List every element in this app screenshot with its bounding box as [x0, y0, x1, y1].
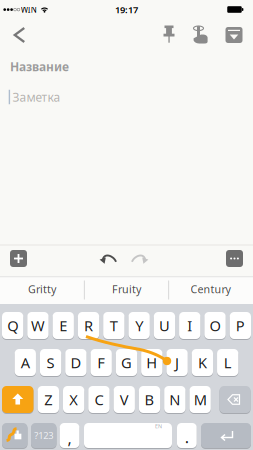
- button[interactable]: P: [230, 312, 251, 339]
- staticText: ,: [67, 427, 71, 449]
- button[interactable]: B: [139, 386, 160, 413]
- staticText: J: [175, 353, 179, 372]
- button[interactable]: V: [114, 386, 135, 413]
- staticText: Название: [10, 58, 69, 74]
- staticText: Fruity: [112, 282, 141, 296]
- staticText: Q: [7, 316, 18, 335]
- button[interactable]: Delete: [219, 386, 250, 413]
- button[interactable]: J: [166, 349, 188, 376]
- button[interactable]: Add: [10, 250, 27, 267]
- button[interactable]: More: [226, 250, 243, 267]
- staticText: D: [70, 353, 81, 372]
- button[interactable]: C: [88, 386, 110, 413]
- button[interactable]: Back: [11, 24, 28, 46]
- staticText: B: [145, 390, 155, 409]
- button[interactable]: Fruity: [86, 277, 166, 301]
- staticText: 19:17: [115, 3, 138, 16]
- button[interactable]: Shift: [2, 386, 33, 413]
- staticText: R: [84, 316, 93, 335]
- button[interactable]: Swype: [2, 423, 27, 448]
- button[interactable]: Space: [84, 423, 172, 448]
- staticText: ?123: [34, 429, 53, 442]
- staticText: Y: [135, 316, 143, 335]
- staticText: L: [224, 353, 232, 372]
- button[interactable]: R: [78, 312, 99, 339]
- button[interactable]: Return: [201, 423, 251, 448]
- staticText: W: [31, 316, 45, 335]
- button[interactable]: Undo: [100, 253, 116, 265]
- button[interactable]: S: [40, 349, 61, 376]
- button[interactable]: Swype gesture: [188, 22, 211, 46]
- button[interactable]: Redo: [132, 253, 148, 265]
- staticText: H: [146, 353, 157, 372]
- button[interactable]: L: [217, 349, 238, 376]
- button[interactable]: O: [204, 312, 226, 339]
- button[interactable]: E: [53, 312, 74, 339]
- staticText: E: [59, 316, 67, 335]
- staticText: S: [47, 353, 55, 372]
- staticText: C: [94, 390, 103, 409]
- staticText: EN: [155, 423, 162, 430]
- button[interactable]: T: [103, 312, 124, 339]
- button[interactable]: Z: [38, 386, 59, 413]
- button[interactable]: Period: [177, 423, 197, 448]
- button[interactable]: G: [116, 349, 137, 376]
- button[interactable]: M: [189, 386, 211, 413]
- staticText: Z: [44, 390, 52, 409]
- button[interactable]: H: [141, 349, 162, 376]
- staticText: X: [69, 390, 78, 409]
- button[interactable]: N: [164, 386, 185, 413]
- button[interactable]: K: [192, 349, 213, 376]
- staticText: K: [198, 353, 207, 372]
- button[interactable]: D: [65, 349, 86, 376]
- staticText: Gritty: [28, 282, 56, 296]
- button[interactable]: I: [179, 312, 200, 339]
- staticText: M: [194, 390, 207, 409]
- staticText: N: [169, 390, 180, 409]
- button[interactable]: Century: [170, 277, 250, 301]
- staticText: G: [121, 353, 132, 372]
- staticText: .: [185, 426, 189, 448]
- staticText: U: [159, 316, 170, 335]
- staticText: P: [236, 316, 245, 335]
- staticText: Century: [190, 282, 230, 296]
- button[interactable]: Save: [222, 24, 245, 46]
- staticText: T: [110, 316, 118, 335]
- staticText: V: [120, 390, 129, 409]
- button[interactable]: Numbers: [31, 423, 56, 448]
- button[interactable]: W: [27, 312, 49, 339]
- button[interactable]: Y: [128, 312, 150, 339]
- staticText: F: [97, 353, 105, 372]
- staticText: I: [187, 316, 192, 335]
- staticText: Заметка: [12, 89, 60, 105]
- button[interactable]: U: [154, 312, 175, 339]
- staticText: WIN: [21, 4, 37, 15]
- staticText: O: [210, 316, 221, 335]
- button[interactable]: Q: [2, 312, 23, 339]
- button[interactable]: X: [63, 386, 84, 413]
- staticText: A: [21, 353, 30, 372]
- button[interactable]: Comma: [60, 423, 79, 448]
- button[interactable]: F: [91, 349, 112, 376]
- button[interactable]: Gritty: [2, 277, 82, 301]
- button[interactable]: Pin: [159, 22, 178, 46]
- button[interactable]: A: [15, 349, 36, 376]
